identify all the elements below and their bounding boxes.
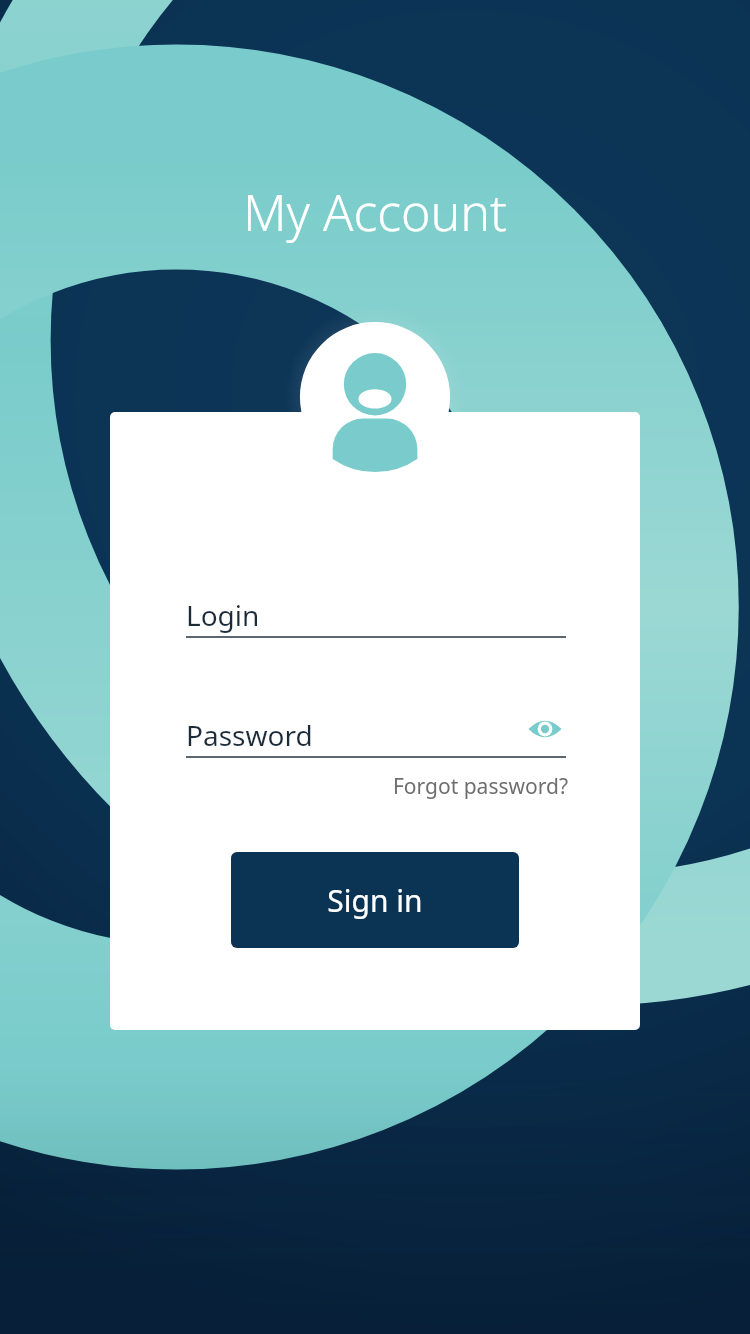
button[interactable]: Show password	[516, 700, 574, 758]
staticText: Password	[186, 716, 313, 754]
button[interactable]: Login	[186, 592, 566, 638]
button[interactable]: Sign in	[231, 852, 519, 948]
staticText: Login	[186, 596, 260, 634]
staticText: My Account	[0, 178, 750, 246]
button[interactable]: Forgot password?	[360, 768, 568, 804]
button[interactable]: Password	[186, 712, 566, 758]
staticText: Sign in	[327, 880, 423, 921]
staticText: Forgot password?	[392, 772, 568, 801]
